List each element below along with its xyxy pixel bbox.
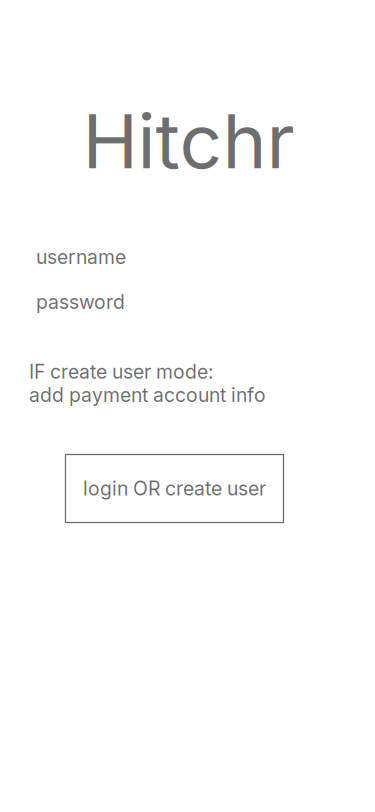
button[interactable]: password [36,287,339,317]
staticText: Hitchr [82,96,294,186]
staticText: password [36,290,125,314]
staticText: login OR create user [83,477,266,500]
button[interactable]: username [36,242,339,272]
staticText: IF create user mode: [29,360,214,383]
staticText: add payment account info [29,383,266,407]
staticText: username [36,245,126,269]
button[interactable]: login OR create user [65,454,283,522]
